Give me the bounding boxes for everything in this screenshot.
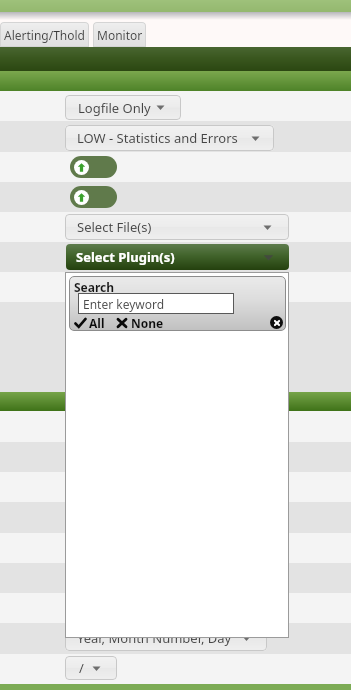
button[interactable]: Toggle upload bbox=[70, 156, 117, 178]
button[interactable]: Logfile Only bbox=[65, 95, 181, 120]
staticText: Select File(s) bbox=[77, 218, 152, 236]
button[interactable]: Select File(s) bbox=[65, 214, 289, 240]
button[interactable]: / bbox=[65, 656, 117, 680]
staticText: All bbox=[89, 315, 105, 331]
staticText: Year, Month Number, Day bbox=[77, 629, 232, 647]
button[interactable]: All bbox=[75, 315, 105, 331]
staticText: Select Plugin(s) bbox=[76, 248, 175, 266]
button[interactable]: Select Plugin(s) bbox=[66, 244, 289, 270]
staticText: Monitor bbox=[97, 27, 143, 43]
button[interactable]: LOW - Statistics and Errors bbox=[65, 125, 274, 151]
button[interactable]: None bbox=[117, 315, 164, 331]
staticText: LOW - Statistics and Errors bbox=[77, 129, 238, 147]
staticText: Logfile Only bbox=[78, 99, 151, 117]
button[interactable]: Alerting/Thold bbox=[0, 22, 89, 47]
staticText: Search bbox=[74, 279, 115, 295]
staticText: None bbox=[131, 315, 164, 331]
button[interactable]: Year, Month Number, Day bbox=[65, 625, 267, 651]
button[interactable]: Clear selection bbox=[270, 316, 283, 329]
button[interactable]: Monitor bbox=[93, 22, 146, 47]
staticText: / bbox=[79, 659, 84, 677]
staticText: Enter keyword bbox=[83, 296, 165, 312]
button[interactable]: Toggle upload bbox=[70, 186, 117, 208]
staticText: Alerting/Thold bbox=[4, 27, 86, 43]
